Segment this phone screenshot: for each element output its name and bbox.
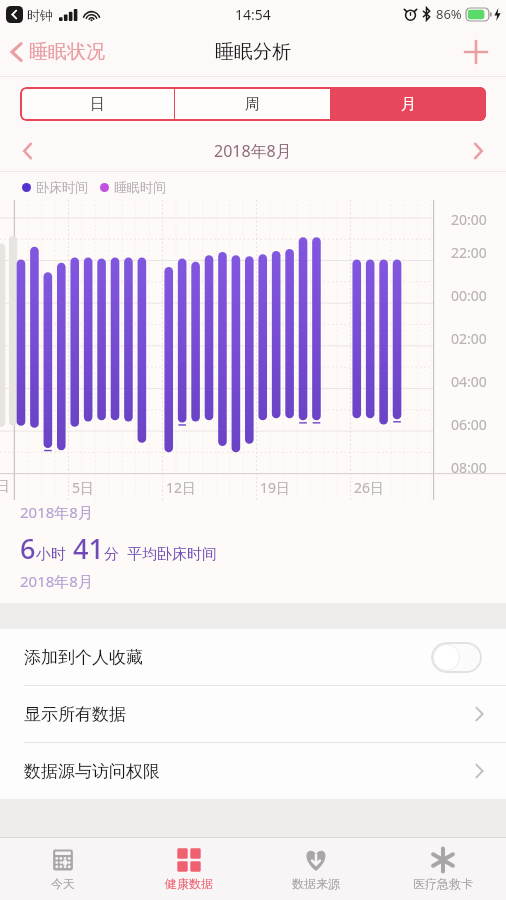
button[interactable]: Add [446,30,506,74]
staticText: 卧床时间 [36,179,88,195]
staticText: 显示所有数据 [24,704,126,725]
staticText: 月 [401,95,416,114]
staticText: 数据源与访问权限 [24,761,160,782]
staticText: 2018年8月 [20,502,93,522]
button[interactable]: 睡眠状况 [0,32,117,72]
staticText: 2018年8月 [214,140,292,162]
staticText: 添加到个人收藏 [24,647,143,668]
staticText: 时钟 [27,7,53,23]
button[interactable]: 数据来源 [252,838,379,900]
staticText: 数据来源 [292,876,340,891]
button[interactable]: 月 [331,87,486,121]
staticText: 06:00 [451,415,487,434]
staticText: 睡眠分析 [215,40,291,64]
staticText: 睡眠时间 [114,179,166,195]
button[interactable]: 日 [20,87,174,121]
staticText: 平均卧床时间 [127,545,217,564]
staticText: 周 [245,95,260,114]
staticText: 04:00 [451,372,487,391]
button[interactable]: 周 [175,87,330,121]
staticText: 22:00 [451,243,487,262]
staticText: 日 [90,95,105,114]
staticText: 19日 [260,478,291,497]
staticText: 6 [20,530,36,567]
staticText: 41 [73,530,104,567]
staticText: 00:00 [451,286,487,305]
staticText: 20:00 [451,210,487,229]
button[interactable]: 显示所有数据 [0,686,506,742]
button[interactable]: 健康数据 [126,838,252,900]
staticText: 日 [0,478,10,496]
button[interactable]: 数据源与访问权限 [0,743,506,799]
staticText: 今天 [51,876,75,891]
button[interactable]: Next month [451,134,506,168]
button[interactable]: 今天 [0,838,126,900]
staticText: 12日 [166,478,197,497]
staticText: 分 [104,545,119,564]
button[interactable]: 医疗急救卡 [379,838,506,900]
staticText: 02:00 [451,329,487,348]
button[interactable]: 添加到个人收藏 [0,629,506,685]
staticText: 08:00 [451,458,487,477]
staticText: 睡眠状况 [29,40,105,64]
staticText: 医疗急救卡 [413,876,473,891]
staticText: 2018年8月 [20,571,93,591]
staticText: 小时 [36,545,66,564]
staticText: 5日 [72,478,95,497]
staticText: 健康数据 [165,876,213,891]
staticText: 14:54 [235,5,271,24]
button[interactable]: Previous month [0,134,55,168]
staticText: 26日 [354,478,385,497]
staticText: 86% [436,5,462,23]
